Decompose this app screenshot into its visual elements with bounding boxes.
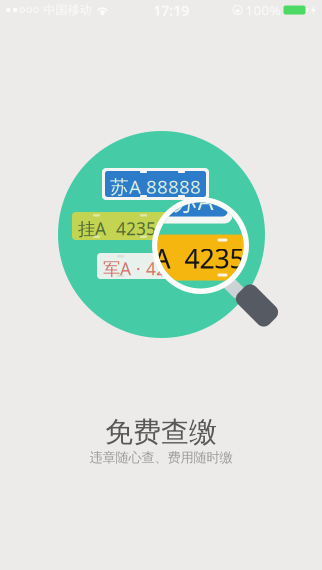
staticText: A 4235 [153, 240, 244, 276]
staticText: 军A · 4235 [103, 257, 186, 280]
staticText: 苏A 88888 [110, 174, 201, 199]
staticText: 100% [245, 1, 280, 19]
staticText: 违章随心查、费用随时缴 [89, 449, 232, 466]
staticText: 苏A [172, 183, 213, 217]
staticText: 中国移动 [43, 3, 91, 17]
staticText: 免费查缴 [105, 415, 217, 449]
staticText: 挂A 4235 [78, 217, 156, 240]
staticText: 17:19 [153, 0, 189, 20]
